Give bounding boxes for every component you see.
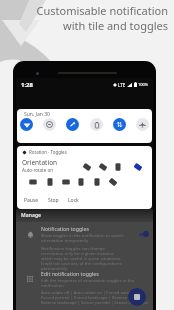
staticText: Stop xyxy=(48,197,59,204)
staticText: Edit notification toggles xyxy=(41,270,99,277)
button[interactable]: Stop xyxy=(47,196,60,205)
staticText: 1:28 xyxy=(21,81,33,89)
button[interactable]: Edit notification toggles xyxy=(24,270,149,288)
staticText: Orientation xyxy=(22,158,58,167)
button[interactable]: Quick setting toggle xyxy=(90,118,103,131)
button[interactable]: Rotation · Toggles xyxy=(17,146,152,209)
button[interactable]: Orientation option xyxy=(97,161,109,173)
button[interactable]: Quick setting toggle xyxy=(136,118,149,131)
button[interactable]: Orientation option xyxy=(112,161,124,173)
button[interactable]: Manage xyxy=(20,211,43,220)
button[interactable]: Orientation option xyxy=(132,161,144,173)
staticText: Auto-rotate on xyxy=(22,167,53,173)
staticText: with tile and toggles xyxy=(63,18,168,33)
button[interactable]: Quick setting toggle xyxy=(20,118,33,131)
button[interactable]: Orientation option xyxy=(81,161,93,173)
button[interactable]: Quick setting toggle xyxy=(66,118,79,131)
button[interactable]: Notification toggles xyxy=(24,225,149,243)
staticText: Show toggles in the notification to swit… xyxy=(41,232,124,243)
staticText: 100% xyxy=(138,82,149,87)
staticText: Edit the sequence of orientation toggles… xyxy=(41,277,135,288)
button[interactable]: Orientation option xyxy=(75,176,87,188)
staticText: Manage xyxy=(21,212,42,219)
button[interactable]: Orientation option xyxy=(91,176,103,188)
staticText: Notification toggles xyxy=(41,225,89,232)
staticText: LTE xyxy=(118,82,126,88)
button[interactable]: Orientation option xyxy=(60,176,72,188)
staticText: Rotation · Toggles xyxy=(29,149,67,155)
staticText: Auto-rotate off | Auto-rotate on | Force… xyxy=(41,290,149,305)
button[interactable]: Quick setting toggle xyxy=(43,118,56,131)
button[interactable]: Quick setting toggle xyxy=(113,118,126,131)
button[interactable]: Orientation option xyxy=(44,176,56,188)
button[interactable]: Pause xyxy=(23,196,40,205)
staticText: Customisable notification xyxy=(36,3,168,18)
button[interactable]: Lock xyxy=(67,196,80,205)
button[interactable]: Notification toggles switch xyxy=(137,229,149,239)
staticText: Pause xyxy=(24,197,39,204)
button[interactable]: Apply settings xyxy=(128,288,146,306)
button[interactable]: Orientation option xyxy=(107,176,119,188)
staticText: Notification toggles can change orientat… xyxy=(41,245,122,271)
button[interactable]: Orientation option xyxy=(27,176,39,188)
staticText: Sun, Jan 30 xyxy=(24,111,50,118)
staticText: Lock xyxy=(68,197,79,204)
